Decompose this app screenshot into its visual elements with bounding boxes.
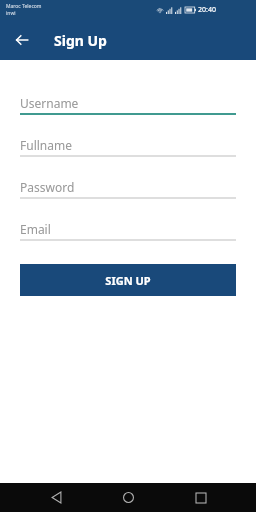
button[interactable]: Fullname bbox=[20, 134, 236, 158]
staticText: Email bbox=[20, 221, 51, 237]
staticText: inwi bbox=[6, 10, 16, 17]
button[interactable]: Recent apps bbox=[184, 483, 218, 512]
staticText: Fullname bbox=[20, 137, 72, 153]
button[interactable]: Back bbox=[8, 26, 36, 54]
button[interactable]: Email bbox=[20, 218, 236, 242]
button[interactable]: SIGN UP bbox=[20, 264, 236, 296]
button[interactable]: Password bbox=[20, 176, 236, 200]
button[interactable]: Home bbox=[111, 483, 145, 512]
button[interactable]: Username bbox=[20, 92, 236, 116]
staticText: Sign Up bbox=[54, 31, 107, 50]
staticText: Password bbox=[20, 179, 75, 195]
staticText: Maroc Telecom bbox=[6, 3, 42, 10]
button[interactable]: Back bbox=[39, 483, 73, 512]
staticText: 20:40 bbox=[198, 5, 216, 15]
staticText: Username bbox=[20, 95, 79, 111]
staticText: SIGN UP bbox=[105, 273, 151, 288]
